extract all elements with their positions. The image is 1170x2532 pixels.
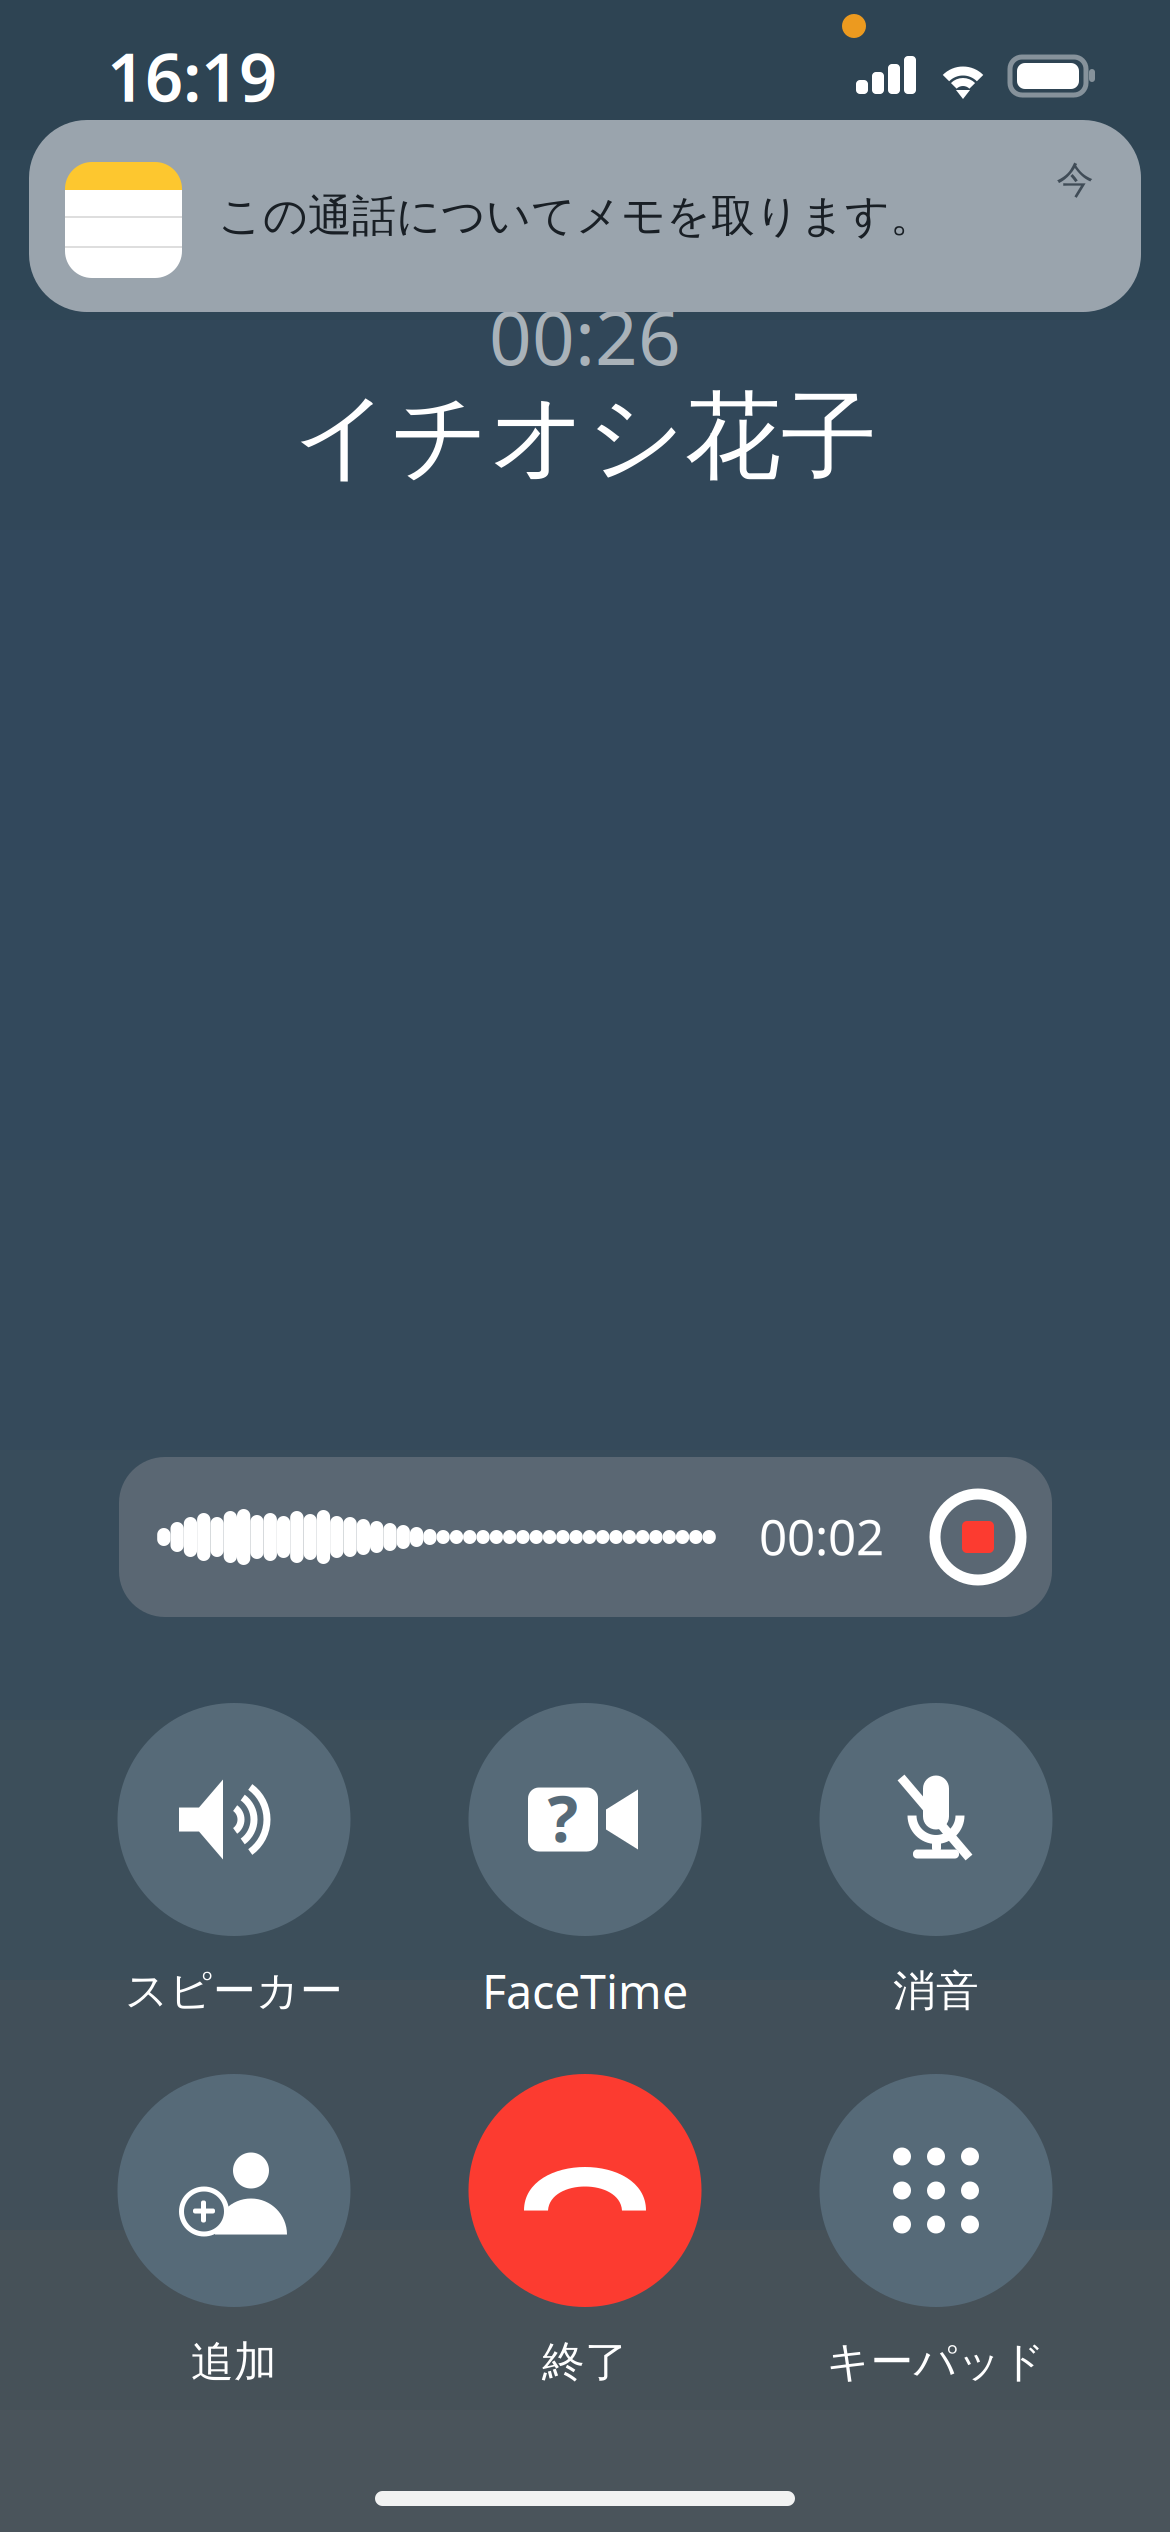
staticText: この通話についてメモを取ります。 xyxy=(218,189,934,243)
staticText: 00:02 xyxy=(759,1503,884,1569)
button[interactable]: キーパッド xyxy=(766,2074,1106,2404)
staticText: イチオシ花子 xyxy=(293,378,877,496)
button[interactable]: 終了 xyxy=(415,2074,755,2404)
staticText: 追加 xyxy=(191,2336,277,2388)
button[interactable]: 追加 xyxy=(64,2074,404,2404)
staticText: キーパッド xyxy=(826,2336,1045,2388)
staticText: 消音 xyxy=(893,1965,979,2017)
button[interactable]: 消音 xyxy=(766,1703,1106,2033)
staticText: スピーカー xyxy=(125,1965,343,2017)
staticText: 00:26 xyxy=(489,286,681,386)
staticText: 16:19 xyxy=(107,32,277,120)
staticText: 終了 xyxy=(542,2336,628,2388)
staticText: ? xyxy=(547,1775,578,1860)
button[interactable]: この通話についてメモを取ります。 xyxy=(29,120,1141,312)
button[interactable]: ? xyxy=(415,1703,755,2033)
staticText: FaceTime xyxy=(482,1960,688,2022)
button[interactable]: スピーカー xyxy=(64,1703,404,2033)
staticText: 今 xyxy=(1056,157,1093,203)
